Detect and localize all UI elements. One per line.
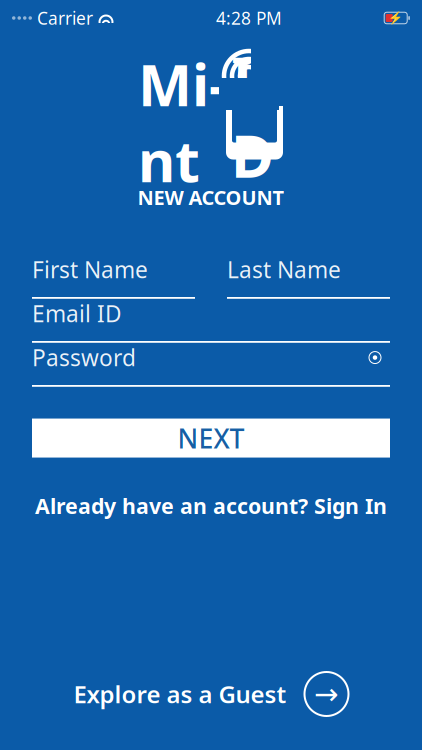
staticText: ⚡ xyxy=(388,11,403,25)
staticText: Already have an account? Sign In xyxy=(35,492,387,520)
staticText: ID xyxy=(231,38,274,194)
button[interactable]: Explore as a Guest xyxy=(65,668,356,720)
staticText: Mint xyxy=(138,46,227,198)
staticText: Email ID xyxy=(32,298,122,329)
button[interactable]: Already have an account? Sign In xyxy=(19,484,403,528)
staticText: First Name xyxy=(32,254,148,285)
button[interactable]: NEXT xyxy=(32,419,390,458)
staticText: Password xyxy=(32,342,136,373)
staticText: Carrier xyxy=(37,6,93,29)
staticText: NEXT xyxy=(177,420,244,456)
staticText: 4:28 PM xyxy=(216,6,282,29)
staticText: Last Name xyxy=(227,254,341,285)
staticText: Explore as a Guest xyxy=(73,678,286,710)
button[interactable]: Show password xyxy=(360,345,390,371)
staticText: → xyxy=(314,677,339,711)
staticText: NEW ACCOUNT xyxy=(137,184,284,211)
